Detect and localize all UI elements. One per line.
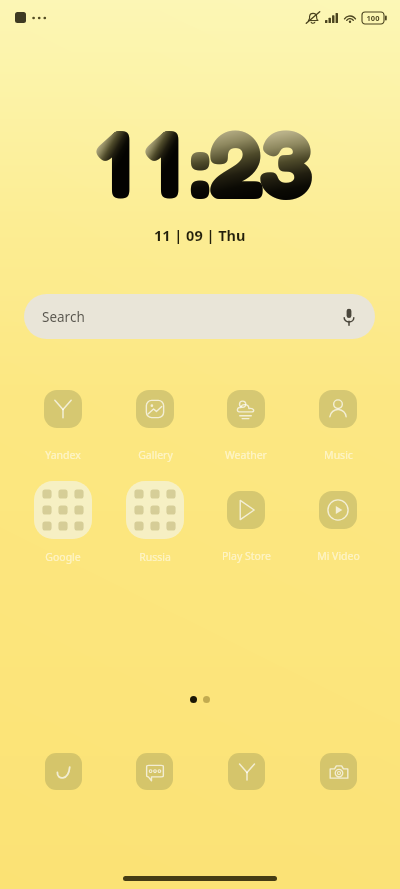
button[interactable]: Music xyxy=(296,390,380,462)
staticText: 11 | 09 | Thu xyxy=(154,225,246,245)
staticText: Gallery xyxy=(138,448,173,462)
staticText: Mi Video xyxy=(317,549,360,563)
staticText: Yandex xyxy=(45,448,81,462)
staticText: 1 xyxy=(138,104,188,220)
staticText: 3 xyxy=(259,104,309,220)
staticText: 2 xyxy=(209,104,259,220)
staticText: : xyxy=(187,104,213,220)
button[interactable]: Play Store xyxy=(204,491,288,563)
staticText: Russia xyxy=(139,550,171,564)
button[interactable]: Phone xyxy=(45,753,82,790)
staticText: Search xyxy=(42,308,85,326)
button[interactable]: Mi Video xyxy=(296,491,380,563)
button[interactable]: Messages xyxy=(136,753,173,790)
button[interactable]: Camera xyxy=(320,753,357,790)
staticText: 1 xyxy=(89,104,139,220)
button[interactable]: Google xyxy=(23,481,103,564)
button[interactable]: Weather xyxy=(204,390,288,462)
staticText: Google xyxy=(45,550,81,564)
staticText: 100 xyxy=(362,13,384,23)
button[interactable]: Browser xyxy=(228,753,265,790)
button[interactable]: Search xyxy=(24,294,375,339)
staticText: Weather xyxy=(225,448,267,462)
button[interactable]: Gallery xyxy=(113,390,197,462)
button[interactable]: Yandex xyxy=(21,390,105,462)
button[interactable]: Russia xyxy=(115,481,195,564)
staticText: Music xyxy=(324,448,353,462)
staticText: Play Store xyxy=(222,549,271,563)
